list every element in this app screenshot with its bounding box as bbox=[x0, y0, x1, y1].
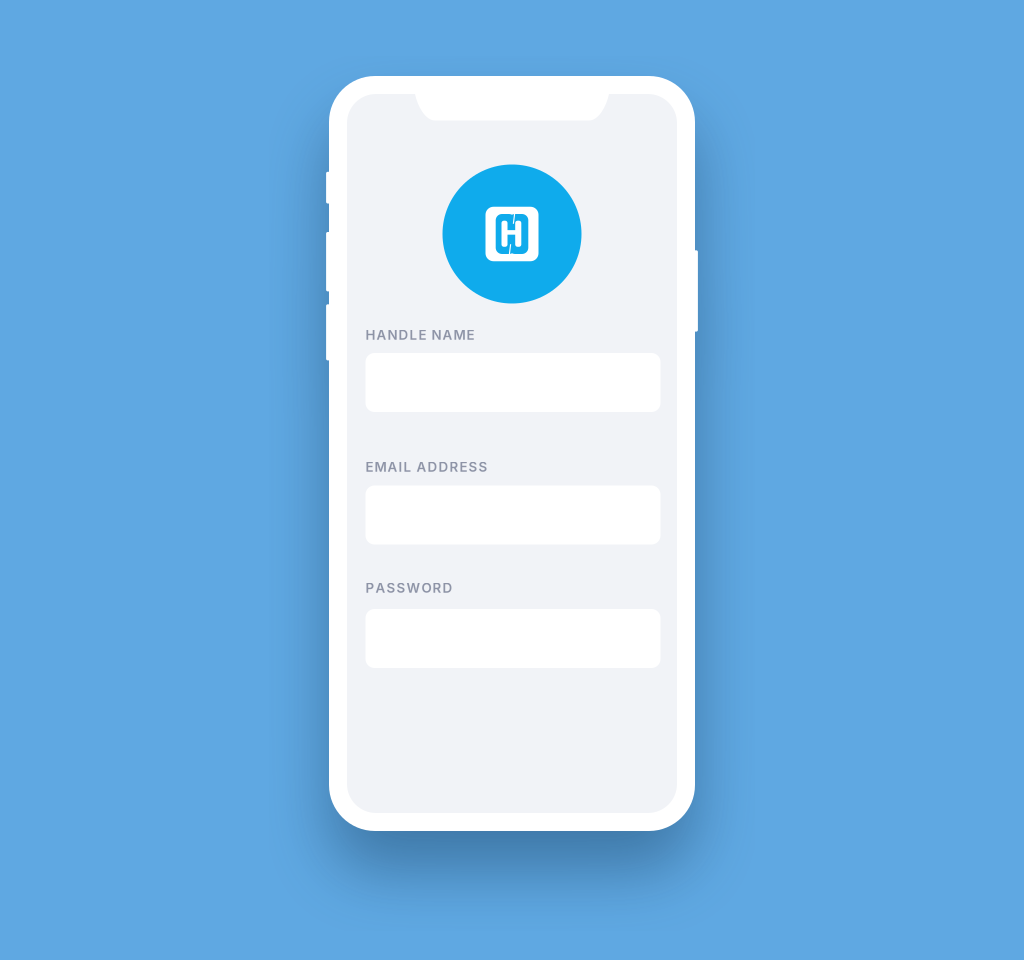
staticText: H A N D L E N A M E bbox=[365, 327, 474, 343]
staticText: E M A I L A D D R E S S bbox=[365, 459, 487, 475]
staticText: P A S S W O R D bbox=[365, 580, 452, 596]
